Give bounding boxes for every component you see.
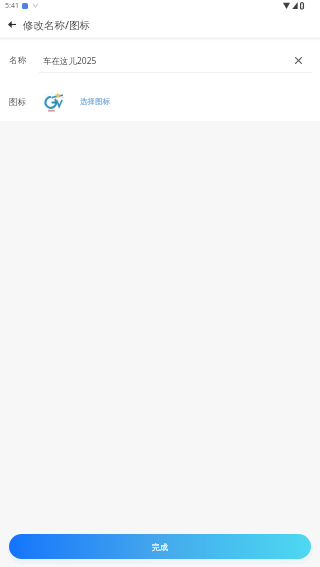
button[interactable]: 完成	[9, 534, 311, 559]
staticText: 完成	[152, 542, 168, 552]
staticText: 车在这儿2025	[43, 55, 97, 67]
staticText: 修改名称/图标	[23, 18, 91, 32]
staticText: 5:41	[5, 1, 19, 11]
button[interactable]: Clear	[289, 51, 307, 69]
button[interactable]: 选择图标	[80, 97, 111, 107]
staticText: 选择图标	[80, 97, 111, 107]
staticText: 图标	[9, 97, 26, 108]
button[interactable]: Back	[0, 13, 23, 36]
staticText: 名称	[9, 55, 26, 66]
